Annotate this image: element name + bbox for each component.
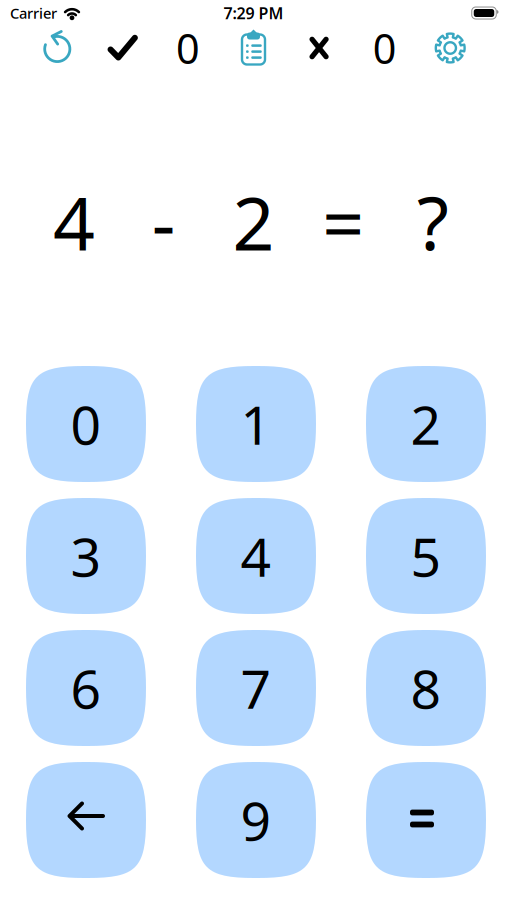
button[interactable]: Delete — [26, 762, 146, 878]
staticText: 2 — [410, 389, 441, 459]
staticText: 2 — [232, 173, 274, 271]
staticText: 0 — [373, 21, 397, 75]
staticText: 0 — [70, 389, 101, 459]
staticText: 8 — [410, 653, 441, 723]
button[interactable]: 2 — [366, 366, 486, 482]
staticText: 5 — [410, 521, 441, 591]
button[interactable]: Reset — [24, 33, 90, 63]
staticText: 6 — [70, 653, 101, 723]
staticText: Carrier — [10, 3, 57, 23]
button[interactable]: 0 — [26, 366, 146, 482]
button[interactable]: History — [221, 30, 286, 66]
staticText: 9 — [240, 785, 271, 855]
staticText: 4 — [53, 173, 95, 271]
button[interactable]: 6 — [26, 630, 146, 746]
staticText: 1 — [240, 389, 271, 459]
button[interactable]: Equals — [366, 762, 486, 878]
button[interactable]: 4 — [196, 498, 316, 614]
button[interactable]: 1 — [196, 366, 316, 482]
staticText: 0 — [176, 21, 200, 75]
button[interactable]: 5 — [366, 498, 486, 614]
button[interactable]: 8 — [366, 630, 486, 746]
staticText: 7 — [240, 653, 271, 723]
staticText: 3 — [70, 521, 101, 591]
staticText: = — [322, 173, 364, 271]
button[interactable]: 9 — [196, 762, 316, 878]
staticText: 4 — [240, 521, 271, 591]
button[interactable]: 3 — [26, 498, 146, 614]
button[interactable]: 7 — [196, 630, 316, 746]
staticText: 7:29 PM — [223, 2, 283, 24]
button[interactable]: Settings — [417, 33, 483, 63]
staticText: - — [152, 173, 176, 271]
staticText: ? — [417, 173, 449, 271]
